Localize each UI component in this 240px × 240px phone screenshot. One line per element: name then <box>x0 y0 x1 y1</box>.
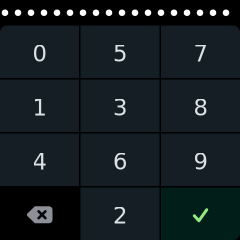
button[interactable]: 2 <box>80 187 159 240</box>
staticText: 5 <box>113 41 127 67</box>
button[interactable]: 1 <box>0 79 79 132</box>
staticText: 9 <box>193 149 207 175</box>
staticText: 2 <box>113 203 127 229</box>
staticText: 0 <box>32 41 46 67</box>
button[interactable]: 6 <box>80 133 159 186</box>
button[interactable]: 8 <box>161 79 240 132</box>
button[interactable]: 7 <box>161 25 240 78</box>
button[interactable]: 9 <box>161 133 240 186</box>
staticText: 7 <box>193 41 207 67</box>
button[interactable]: 4 <box>0 133 79 186</box>
button[interactable]: Delete <box>0 187 79 240</box>
button[interactable]: 3 <box>80 79 159 132</box>
staticText: 3 <box>113 95 127 121</box>
staticText: 1 <box>32 95 46 121</box>
button[interactable]: 5 <box>80 25 159 78</box>
staticText: 4 <box>32 149 46 175</box>
button[interactable]: 0 <box>0 25 79 78</box>
button[interactable]: Confirm <box>161 187 240 240</box>
staticText: 8 <box>193 95 207 121</box>
staticText: 6 <box>113 149 127 175</box>
